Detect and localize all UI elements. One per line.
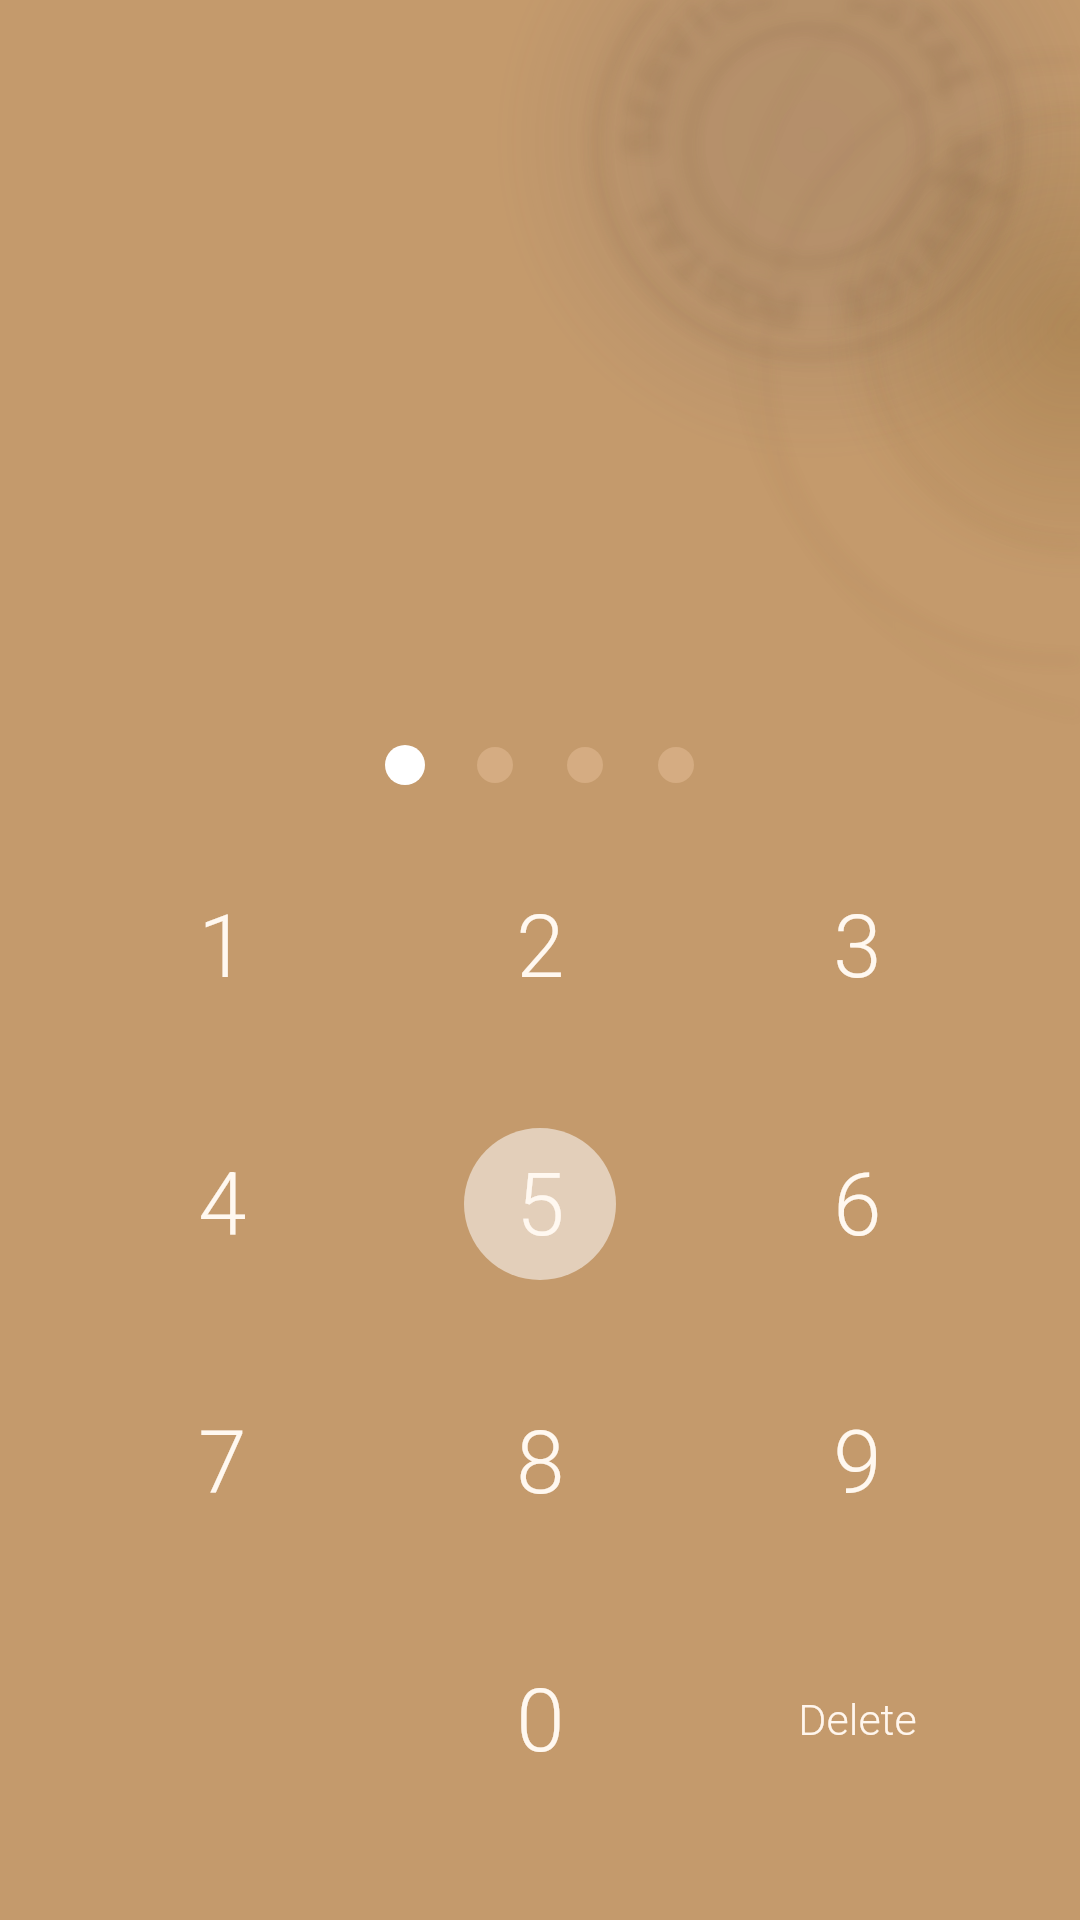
staticText: 3: [833, 896, 882, 998]
staticText: 0: [516, 1670, 565, 1772]
staticText: 5: [516, 1154, 565, 1256]
button[interactable]: 3: [777, 867, 937, 1027]
staticText: 4: [198, 1154, 247, 1256]
staticText: 7: [198, 1412, 247, 1514]
button[interactable]: Delete: [762, 1665, 952, 1775]
staticText: Delete: [798, 1695, 917, 1745]
button[interactable]: 8: [460, 1383, 620, 1543]
button[interactable]: 1: [142, 867, 302, 1027]
button[interactable]: 7: [142, 1383, 302, 1543]
button[interactable]: 0: [460, 1641, 620, 1801]
button[interactable]: 6: [777, 1125, 937, 1285]
staticText: 1: [198, 896, 247, 998]
button[interactable]: 2: [460, 867, 620, 1027]
other: PIN entry, 1 of 4 digits entered: [0, 0, 1080, 1920]
button[interactable]: 5: [460, 1125, 620, 1285]
button[interactable]: 9: [777, 1383, 937, 1543]
staticText: 8: [516, 1412, 565, 1514]
staticText: 2: [516, 896, 565, 998]
staticText: 9: [833, 1412, 882, 1514]
button[interactable]: 4: [142, 1125, 302, 1285]
staticText: 6: [833, 1154, 882, 1256]
